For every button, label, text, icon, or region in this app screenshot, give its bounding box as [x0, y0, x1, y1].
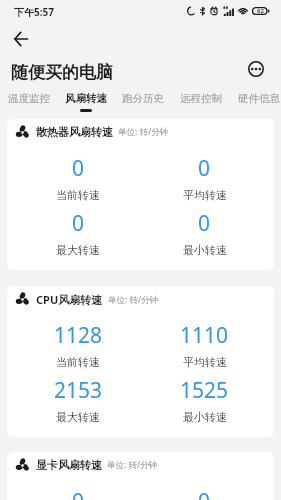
staticText: 0: [198, 154, 211, 183]
staticText: 平均转速: [183, 188, 227, 202]
staticText: 下午5:57: [14, 5, 54, 19]
staticText: 远程控制: [180, 92, 222, 105]
staticText: 62: [257, 7, 264, 15]
staticText: 硬件信息: [238, 92, 280, 105]
button[interactable]: 硬件信息: [230, 88, 281, 114]
staticText: 2153: [54, 376, 103, 405]
staticText: 当前转速: [56, 355, 100, 369]
button[interactable]: Back: [7, 25, 35, 53]
button[interactable]: More options: [243, 56, 268, 81]
button[interactable]: 显卡风扇转速: [7, 452, 274, 500]
staticText: 随便买的电脑: [11, 62, 113, 83]
staticText: 1525: [180, 376, 229, 405]
staticText: 0: [198, 209, 211, 238]
button[interactable]: CPU风扇转速: [7, 286, 274, 437]
button[interactable]: 散热器风扇转速: [7, 119, 274, 270]
staticText: 最大转速: [56, 410, 100, 424]
staticText: 平均转速: [183, 355, 227, 369]
staticText: 当前转速: [56, 188, 100, 202]
button[interactable]: 温度监控: [0, 88, 57, 114]
staticText: CPU风扇转速: [36, 292, 103, 307]
staticText: 最大转速: [56, 243, 100, 257]
staticText: 单位: 转/分钟: [108, 294, 159, 306]
staticText: 显卡风扇转速: [36, 458, 102, 472]
button[interactable]: 远程控制: [172, 88, 230, 114]
button[interactable]: 风扇转速: [57, 88, 114, 114]
staticText: 温度监控: [8, 92, 50, 105]
staticText: 跑分历史: [122, 92, 164, 105]
staticText: 0: [72, 154, 85, 183]
staticText: 0: [72, 487, 85, 500]
staticText: 风扇转速: [65, 92, 107, 105]
staticText: 单位: 转/分钟: [107, 459, 158, 471]
staticText: 0: [198, 487, 211, 500]
staticText: 最小转速: [183, 410, 227, 424]
staticText: 1128: [54, 321, 103, 350]
staticText: 最小转速: [183, 243, 227, 257]
staticText: 0: [72, 209, 85, 238]
staticText: 1110: [180, 321, 229, 350]
button[interactable]: 跑分历史: [114, 88, 172, 114]
staticText: 散热器风扇转速: [36, 125, 113, 139]
staticText: 单位: 转/分钟: [118, 126, 169, 138]
